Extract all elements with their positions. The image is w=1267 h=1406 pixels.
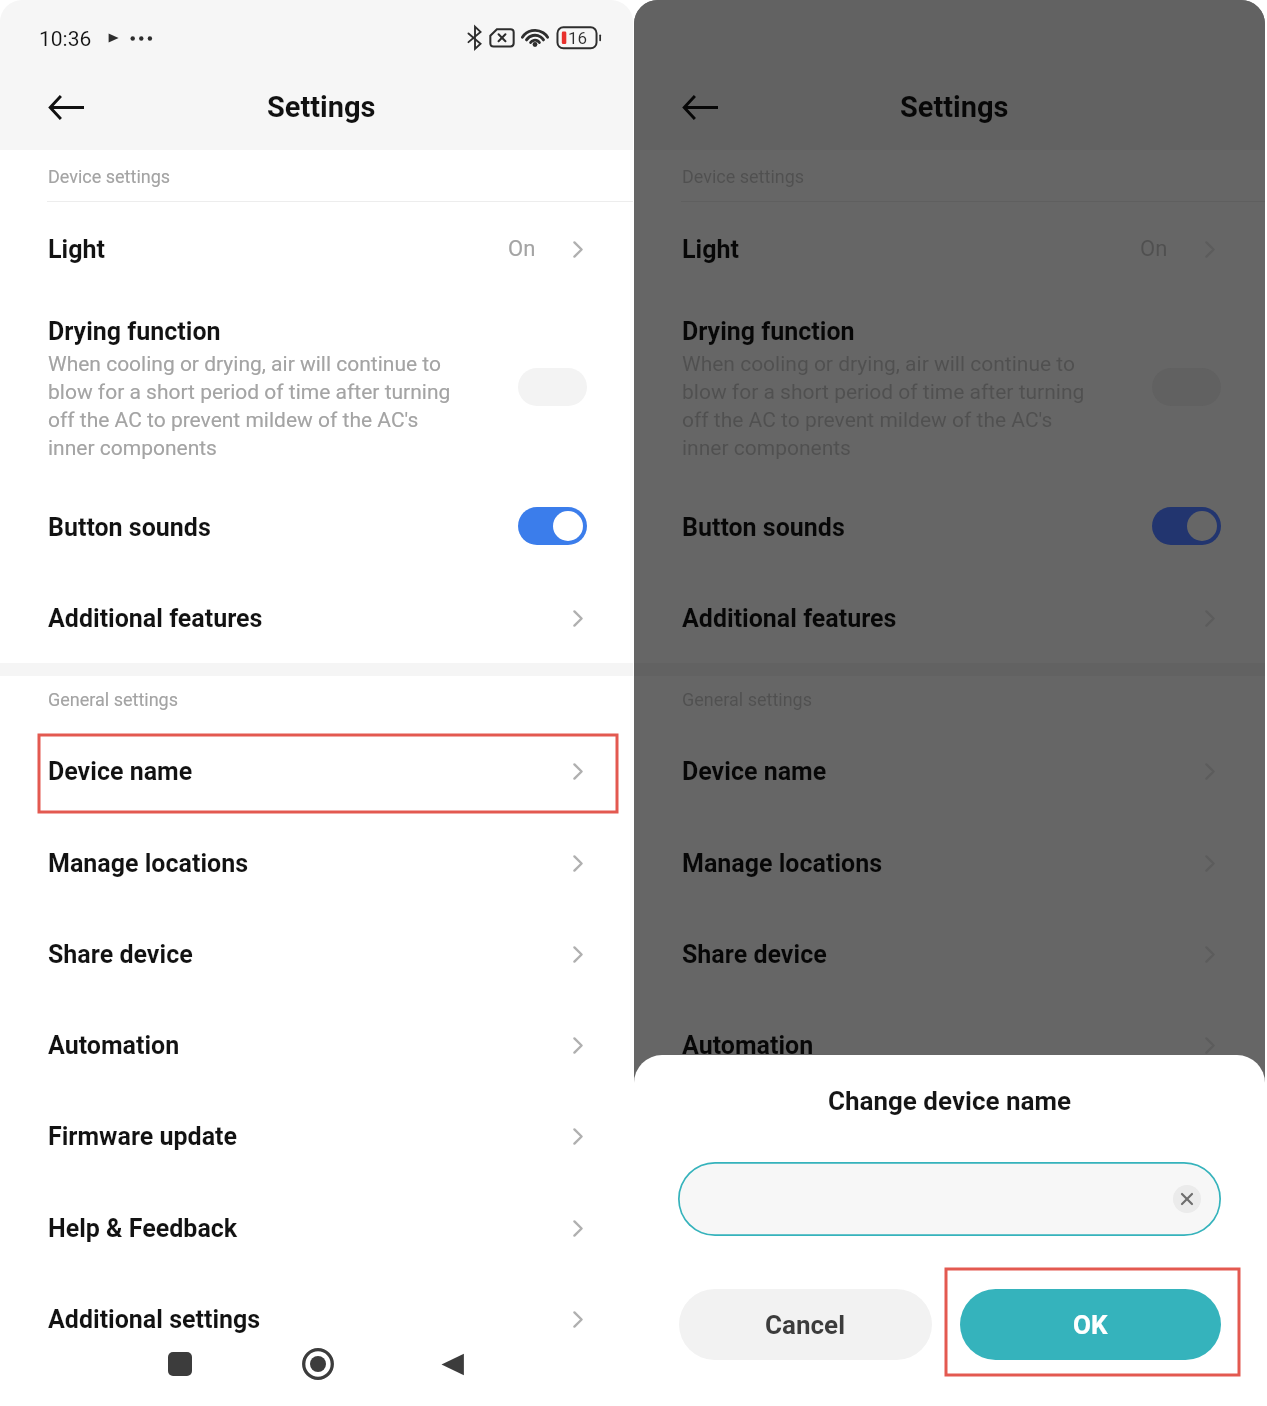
- button[interactable]: Switch off: [518, 368, 587, 406]
- button[interactable]: Additional features: [0, 585, 633, 651]
- button[interactable]: Automation: [634, 1009, 1265, 1081]
- button[interactable]: Switch on: [1152, 507, 1221, 545]
- staticText: Device name: [682, 757, 827, 786]
- staticText: When cooling or drying, air will continu…: [48, 352, 463, 460]
- button[interactable]: Button sounds: [0, 493, 633, 559]
- staticText: On: [1140, 236, 1168, 262]
- button[interactable]: Additional settings: [0, 1283, 633, 1355]
- button[interactable]: Home: [286, 1332, 350, 1396]
- staticText: Drying function: [682, 317, 855, 346]
- staticText: Device settings: [48, 166, 171, 187]
- staticText: General settings: [48, 689, 178, 710]
- staticText: Drying function: [48, 317, 221, 346]
- staticText: Button sounds: [48, 513, 211, 542]
- button[interactable]: Recent apps: [148, 1332, 212, 1396]
- button[interactable]: Help & Feedback: [0, 1192, 633, 1264]
- button[interactable]: Navigate back: [663, 78, 739, 136]
- button[interactable]: Additional features: [634, 585, 1265, 651]
- button[interactable]: Light: [0, 216, 633, 282]
- staticText: Cancel: [765, 1310, 846, 1340]
- staticText: 10:36: [39, 27, 92, 52]
- button[interactable]: Light: [634, 216, 1265, 282]
- button[interactable]: Drying function: [0, 300, 633, 476]
- staticText: Firmware update: [48, 1122, 238, 1151]
- staticText: Share device: [682, 940, 827, 969]
- staticText: General settings: [682, 689, 812, 710]
- staticText: Device settings: [682, 166, 805, 187]
- staticText: Automation: [48, 1031, 180, 1060]
- button[interactable]: Navigate back: [29, 78, 105, 136]
- staticText: Additional settings: [48, 1305, 261, 1334]
- staticText: OK: [1073, 1310, 1108, 1340]
- staticText: Additional features: [682, 604, 897, 633]
- button[interactable]: Firmware update: [0, 1100, 633, 1172]
- button[interactable]: Switch on: [518, 507, 587, 545]
- staticText: Settings: [267, 90, 376, 124]
- staticText: 16: [568, 28, 588, 48]
- staticText: Button sounds: [682, 513, 845, 542]
- staticText: When cooling or drying, air will continu…: [682, 352, 1097, 460]
- staticText: Light: [682, 235, 739, 264]
- staticText: Change device name: [634, 1086, 1265, 1116]
- button[interactable]: Device name field: [678, 1162, 1221, 1236]
- staticText: Device name: [48, 757, 193, 786]
- button[interactable]: Button sounds: [634, 493, 1265, 559]
- button[interactable]: Device name: [634, 735, 1265, 807]
- button[interactable]: Manage locations: [634, 827, 1265, 899]
- staticText: Share device: [48, 940, 193, 969]
- button[interactable]: Device name: [0, 735, 633, 807]
- button[interactable]: Manage locations: [0, 827, 633, 899]
- staticText: Manage locations: [48, 849, 249, 878]
- staticText: Light: [48, 235, 105, 264]
- button[interactable]: Share device: [634, 918, 1265, 990]
- button[interactable]: Back: [421, 1332, 485, 1396]
- button[interactable]: Share device: [0, 918, 633, 990]
- staticText: Additional features: [48, 604, 263, 633]
- staticText: Help & Feedback: [48, 1214, 238, 1243]
- button[interactable]: OK: [960, 1289, 1221, 1360]
- staticText: Settings: [900, 90, 1009, 124]
- button[interactable]: Drying function: [634, 300, 1265, 476]
- button[interactable]: Automation: [0, 1009, 633, 1081]
- button[interactable]: Cancel: [679, 1289, 932, 1360]
- staticText: On: [508, 236, 536, 262]
- staticText: Manage locations: [682, 849, 883, 878]
- button[interactable]: Clear text: [1173, 1185, 1201, 1213]
- staticText: Automation: [682, 1031, 814, 1060]
